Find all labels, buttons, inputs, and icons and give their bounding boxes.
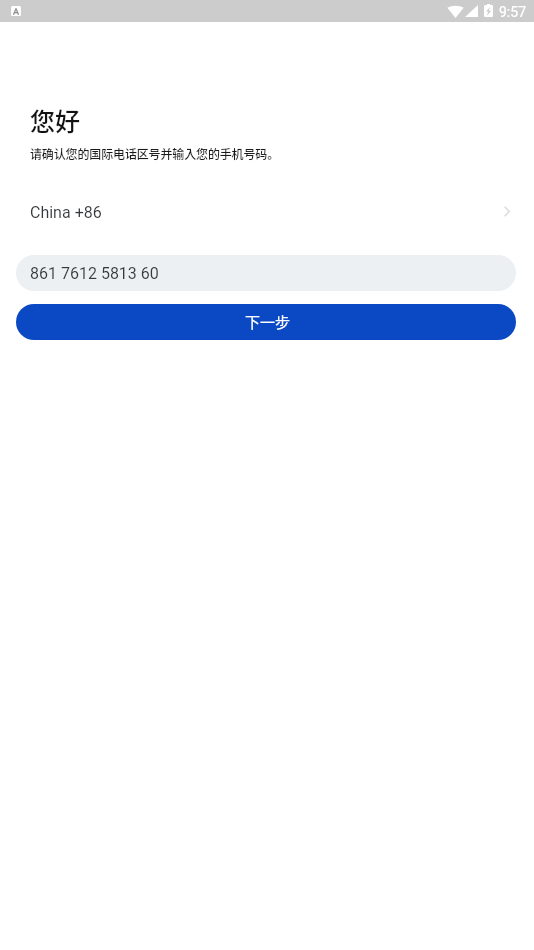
staticText: 861 7612 5813 60 bbox=[30, 264, 159, 283]
button[interactable]: China +86 bbox=[0, 190, 534, 235]
staticText: China +86 bbox=[30, 203, 102, 222]
button[interactable]: 861 7612 5813 60 bbox=[16, 255, 516, 291]
staticText: 您好 bbox=[30, 102, 81, 138]
staticText: 9:57 bbox=[499, 4, 526, 20]
staticText: 下一步 bbox=[245, 311, 291, 333]
staticText: 请确认您的国际电话区号并输入您的手机号码。 bbox=[30, 145, 280, 162]
other: Choose country code bbox=[504, 206, 510, 217]
button[interactable]: 下一步 bbox=[16, 304, 516, 340]
